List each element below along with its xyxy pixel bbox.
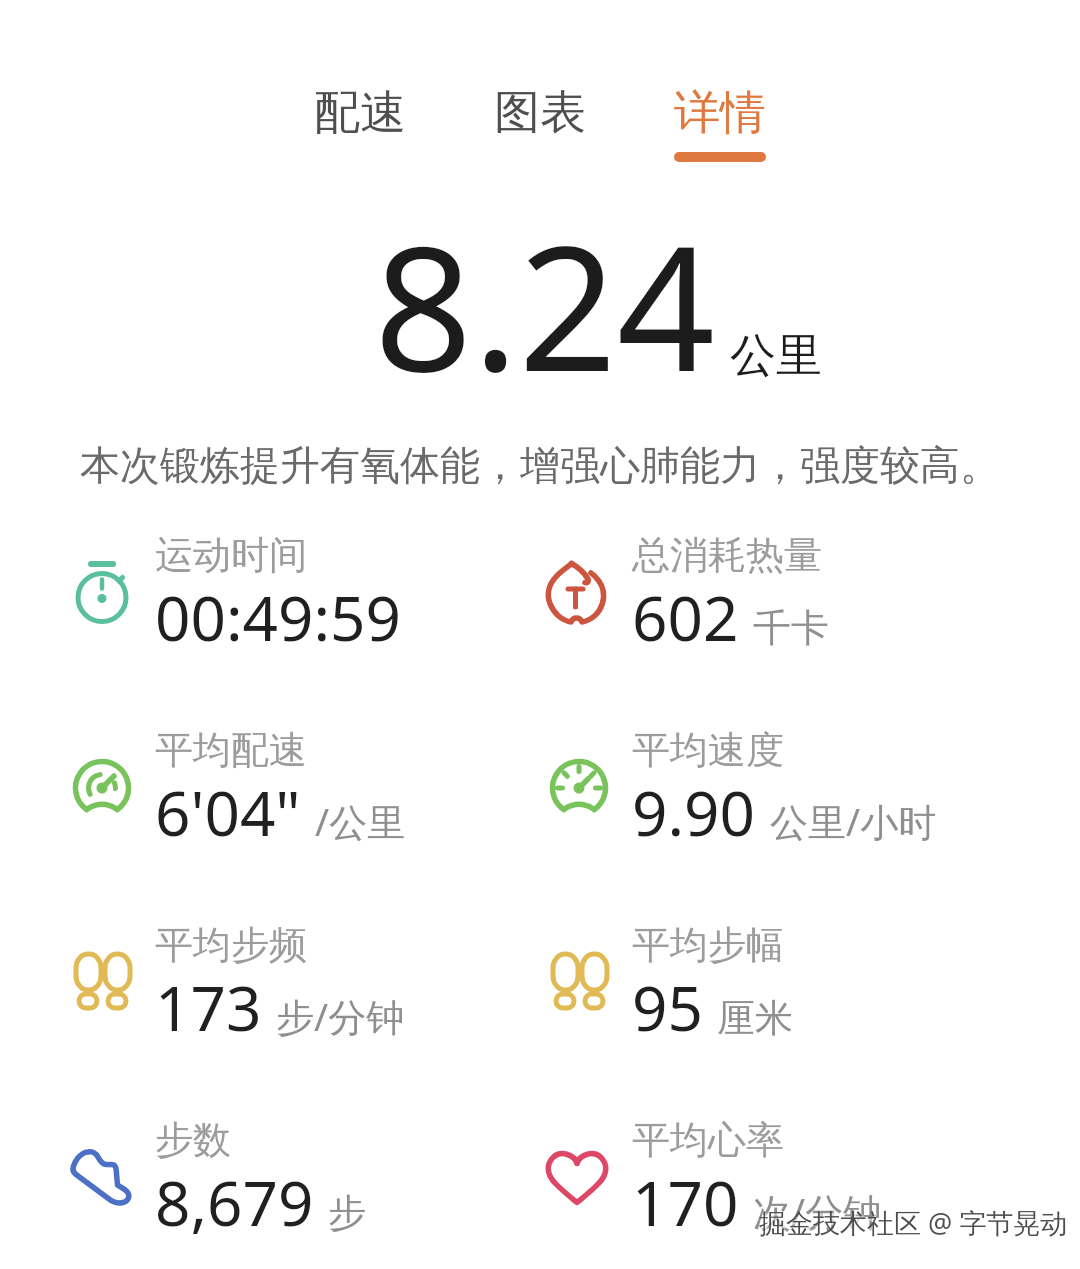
staticText: 厘米 [717, 994, 793, 1042]
staticText: 步 [328, 1189, 366, 1237]
staticText: 602 [632, 575, 739, 659]
button[interactable]: 平均步幅 [545, 921, 706, 1053]
staticText: 运动时间 [155, 531, 307, 579]
staticText: 详情 [674, 84, 766, 142]
staticText: 公里/小时 [770, 795, 937, 847]
staticText: 公里 [730, 327, 822, 385]
staticText: 8,679 [155, 1160, 314, 1244]
staticText: 平均速度 [632, 726, 784, 774]
button[interactable]: 平均配速 [68, 726, 319, 858]
button[interactable]: 平均心率 [545, 1116, 795, 1248]
staticText: 平均配速 [155, 726, 307, 774]
staticText: /公里 [315, 795, 406, 847]
button[interactable]: 步数 [68, 1116, 279, 1248]
staticText: 95 [632, 965, 703, 1049]
staticText: 图表 [494, 84, 586, 142]
staticText: 6'04" [155, 770, 301, 854]
staticText: 总消耗热量 [632, 531, 822, 579]
button[interactable]: 图表 [494, 84, 586, 162]
staticText: 平均步幅 [632, 921, 784, 969]
staticText: 千卡 [753, 604, 829, 652]
staticText: 配速 [314, 84, 406, 142]
staticText: 平均步频 [155, 921, 307, 969]
staticText: 9.90 [632, 770, 756, 854]
staticText: 步/分钟 [276, 990, 405, 1042]
button[interactable]: 总消耗热量 [545, 531, 742, 663]
button[interactable]: 详情 [674, 84, 766, 162]
button[interactable]: 配速 [314, 84, 406, 162]
button[interactable]: 平均速度 [545, 726, 850, 858]
staticText: 步数 [155, 1116, 231, 1164]
staticText: 次/分钟 [753, 1185, 882, 1237]
staticText: 8.24 [374, 187, 716, 421]
staticText: 掘金技术社区 @ 字节晃动 [759, 1204, 1068, 1241]
button[interactable]: 平均步频 [68, 921, 318, 1053]
button[interactable]: 运动时间 [68, 531, 315, 663]
staticText: 173 [155, 965, 262, 1049]
staticText: 00:49:59 [155, 575, 402, 659]
staticText: 平均心率 [632, 1116, 784, 1164]
staticText: 170 [632, 1160, 739, 1244]
staticText: 本次锻炼提升有氧体能，增强心肺能力，强度较高。 [80, 440, 1000, 490]
